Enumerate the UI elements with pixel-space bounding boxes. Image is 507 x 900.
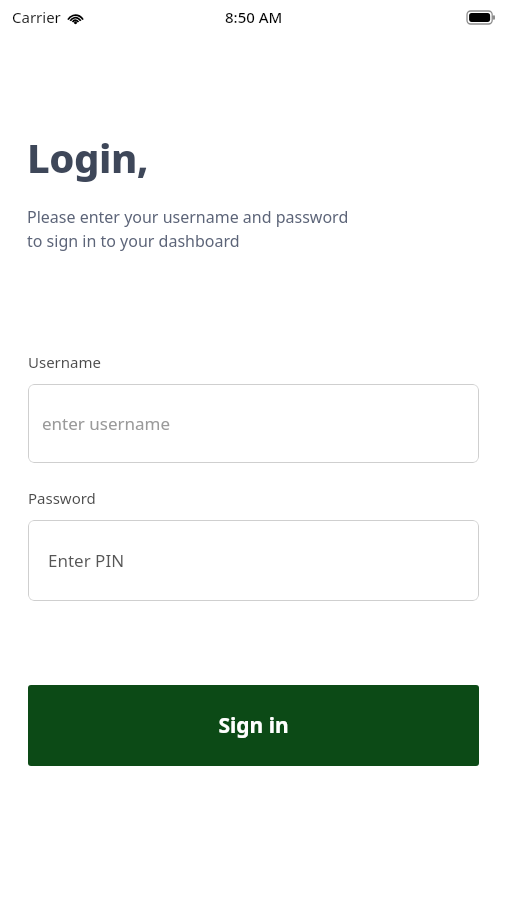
staticText: Please enter your username and password … — [27, 206, 349, 252]
staticText: Login, — [27, 130, 149, 184]
button[interactable]: Enter PIN — [28, 520, 479, 601]
staticText: enter username — [42, 412, 171, 435]
button[interactable]: Sign in — [28, 685, 479, 766]
button[interactable]: enter username — [28, 384, 479, 463]
staticText: Password — [28, 488, 96, 508]
staticText: Enter PIN — [48, 549, 125, 572]
staticText: Username — [28, 352, 101, 372]
staticText: Carrier — [12, 7, 61, 27]
staticText: Sign in — [218, 711, 289, 740]
staticText: 8:50 AM — [225, 7, 283, 27]
